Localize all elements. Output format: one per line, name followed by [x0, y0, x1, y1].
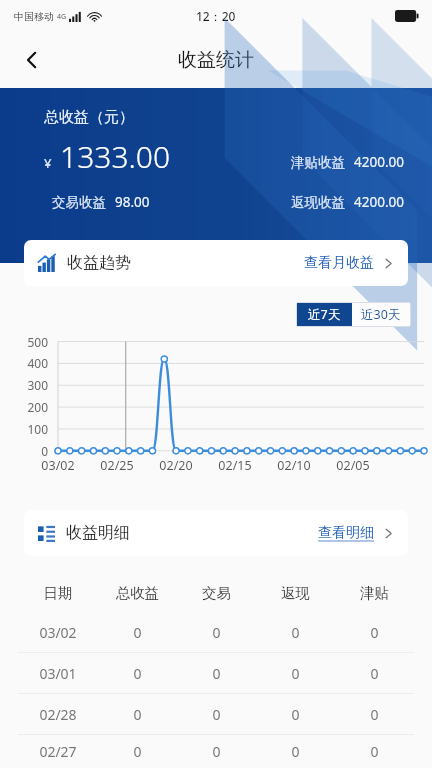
button[interactable]: 近7天 [297, 303, 352, 326]
staticText: 02/25 [95, 457, 139, 474]
staticText: 津贴收益 [291, 154, 345, 171]
button[interactable]: 收益趋势 [24, 240, 408, 286]
staticText: 收益明细 [66, 523, 130, 543]
staticText: 4200.00 [354, 153, 404, 171]
staticText: ¥ [44, 154, 52, 172]
staticText: 98.00 [115, 193, 150, 211]
staticText: 0 [335, 623, 414, 642]
button[interactable]: 收益明细 [24, 510, 408, 556]
staticText: 03/01 [18, 664, 98, 683]
staticText: 0 [177, 742, 256, 761]
staticText: 返现收益 [291, 194, 345, 211]
staticText: 0 [335, 742, 414, 761]
button[interactable]: 近30天 [352, 303, 410, 326]
staticText: 收益统计 [178, 48, 254, 72]
staticText: 100 [0, 421, 48, 437]
staticText: 0 [256, 705, 335, 724]
staticText: 200 [0, 399, 48, 415]
button[interactable]: 02/27 [0, 735, 432, 768]
staticText: 0 [0, 443, 48, 459]
staticText: 02/10 [272, 457, 316, 474]
staticText: 0 [98, 742, 177, 761]
staticText: 0 [256, 664, 335, 683]
staticText: 返现 [256, 584, 335, 602]
staticText: 近7天 [308, 306, 341, 323]
staticText: 0 [256, 742, 335, 761]
staticText: 0 [98, 623, 177, 642]
staticText: 02/20 [154, 457, 198, 474]
button[interactable]: 02/28 [0, 694, 432, 734]
staticText: 400 [0, 355, 48, 371]
staticText: 1333.00 [60, 136, 171, 177]
staticText: 02/05 [331, 457, 375, 474]
staticText: 12：20 [196, 8, 236, 24]
staticText: 02/27 [18, 742, 98, 761]
staticText: 0 [177, 705, 256, 724]
staticText: 中国移动 [14, 10, 54, 23]
staticText: 交易收益 [52, 194, 106, 211]
staticText: 津贴 [335, 584, 414, 602]
staticText: 300 [0, 377, 48, 393]
staticText: 4200.00 [354, 193, 404, 211]
button[interactable]: 03/02 [0, 612, 432, 652]
staticText: 02/28 [18, 705, 98, 724]
staticText: 0 [98, 664, 177, 683]
staticText: 查看月收益 [304, 254, 374, 272]
staticText: 0 [177, 623, 256, 642]
staticText: 总收益（元） [44, 108, 134, 127]
staticText: 02/15 [213, 457, 257, 474]
staticText: 日期 [18, 584, 98, 602]
staticText: 近30天 [361, 306, 401, 323]
staticText: 0 [335, 705, 414, 724]
staticText: 收益趋势 [67, 253, 131, 273]
staticText: 0 [335, 664, 414, 683]
staticText: 查看明细 [318, 524, 374, 542]
button[interactable]: 03/01 [0, 653, 432, 693]
staticText: 03/02 [18, 623, 98, 642]
staticText: 0 [256, 623, 335, 642]
staticText: 03/02 [36, 457, 80, 474]
staticText: 0 [98, 705, 177, 724]
staticText: 0 [177, 664, 256, 683]
staticText: 4G [57, 12, 67, 22]
staticText: 交易 [177, 584, 256, 602]
staticText: 500 [0, 334, 48, 350]
button[interactable]: Back [8, 36, 56, 84]
staticText: 总收益 [98, 584, 177, 602]
